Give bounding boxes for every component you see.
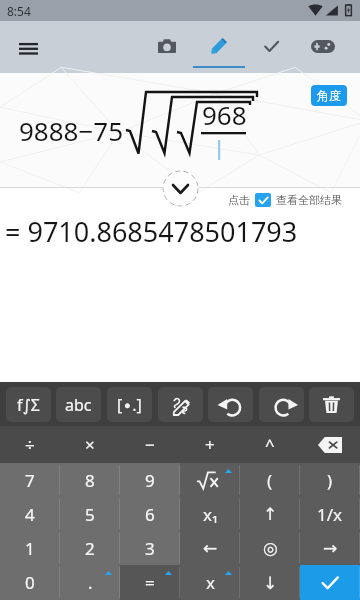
button[interactable]: ↑ xyxy=(240,497,300,531)
staticText: 1 xyxy=(25,537,35,560)
button[interactable]: + xyxy=(180,426,240,463)
button[interactable]: Redo xyxy=(259,387,304,422)
button[interactable]: 4 xyxy=(0,497,60,531)
staticText: → xyxy=(323,538,338,558)
button[interactable]: 6 xyxy=(120,497,180,531)
staticText: abc xyxy=(65,394,92,416)
staticText: 8 xyxy=(85,469,95,492)
staticText: 角度 xyxy=(317,88,341,103)
staticText: + xyxy=(205,433,215,456)
button[interactable]: × xyxy=(60,426,120,463)
button[interactable]: 1 xyxy=(0,531,60,565)
button[interactable]: 0 xyxy=(0,565,60,600)
staticText: ↑ xyxy=(263,504,278,524)
button[interactable]: 7 xyxy=(0,463,60,497)
button[interactable]: 3 xyxy=(120,531,180,565)
staticText: [∙.] xyxy=(117,394,142,416)
button[interactable]: Draw xyxy=(193,21,245,73)
button[interactable]: 1/x xyxy=(300,497,360,531)
staticText: 6 xyxy=(145,503,155,526)
button[interactable]: ÷ xyxy=(0,426,60,463)
staticText: − xyxy=(145,433,155,456)
button[interactable]: 2 xyxy=(60,531,120,565)
staticText: ÷ xyxy=(25,433,35,456)
button[interactable]: = xyxy=(120,565,180,600)
staticText: 0 xyxy=(25,571,35,594)
button[interactable]: Games xyxy=(297,21,349,73)
button[interactable]: Matrix xyxy=(107,387,152,422)
staticText: ^ xyxy=(265,433,275,456)
staticText: ◎ xyxy=(263,538,278,558)
button[interactable]: → xyxy=(300,531,360,565)
button[interactable] xyxy=(180,463,240,497)
staticText: 1/x xyxy=(317,503,343,526)
button[interactable]: ◎ xyxy=(240,531,300,565)
staticText: x₁ xyxy=(203,503,218,526)
staticText: x xyxy=(206,571,215,594)
staticText: ( xyxy=(267,469,273,492)
staticText: 查看全部结果 xyxy=(276,193,342,207)
staticText: 8:54 xyxy=(7,3,31,19)
staticText: 9 xyxy=(145,469,155,492)
button[interactable]: Handwriting xyxy=(158,387,203,422)
staticText: × xyxy=(85,433,95,456)
button[interactable]: x xyxy=(180,565,240,600)
staticText: ↓ xyxy=(263,573,278,593)
button[interactable]: ) xyxy=(300,463,360,497)
button[interactable]: Clear xyxy=(309,387,354,422)
button[interactable]: 角度 xyxy=(311,85,347,106)
staticText: 5 xyxy=(85,503,95,526)
staticText: = xyxy=(145,571,155,594)
staticText: 968 xyxy=(202,97,247,132)
button[interactable]: ← xyxy=(180,531,240,565)
button[interactable]: Menu xyxy=(1,22,55,74)
button[interactable]: . xyxy=(60,565,120,600)
button[interactable]: ↓ xyxy=(240,565,300,600)
staticText: f∫Σ xyxy=(17,394,40,416)
staticText: ) xyxy=(327,469,333,492)
button[interactable]: x₁ xyxy=(180,497,240,531)
staticText: ← xyxy=(203,538,218,558)
button[interactable]: 8 xyxy=(60,463,120,497)
button[interactable]: 9 xyxy=(120,463,180,497)
button[interactable]: Camera xyxy=(141,21,193,73)
staticText: 7 xyxy=(25,469,35,492)
staticText: 2 xyxy=(85,537,95,560)
button[interactable]: 5 xyxy=(60,497,120,531)
staticText: 9888−75 xyxy=(19,113,124,148)
button[interactable] xyxy=(255,193,271,207)
staticText: . xyxy=(88,571,93,594)
button[interactable] xyxy=(300,565,360,600)
button[interactable]: Confirm xyxy=(245,21,297,73)
button[interactable]: − xyxy=(120,426,180,463)
staticText: 点击 xyxy=(228,193,250,207)
staticText: = 9710.8685478501793 xyxy=(5,213,298,250)
staticText: 3 xyxy=(145,537,155,560)
button[interactable]: Alphabet xyxy=(56,387,101,422)
staticText: 4 xyxy=(25,503,35,526)
button[interactable]: Expand xyxy=(162,170,199,207)
button[interactable]: ^ xyxy=(240,426,300,463)
button[interactable]: Undo xyxy=(208,387,253,422)
button[interactable]: ( xyxy=(240,463,300,497)
button[interactable]: Backspace xyxy=(300,426,360,463)
button[interactable]: Functions xyxy=(6,387,51,422)
